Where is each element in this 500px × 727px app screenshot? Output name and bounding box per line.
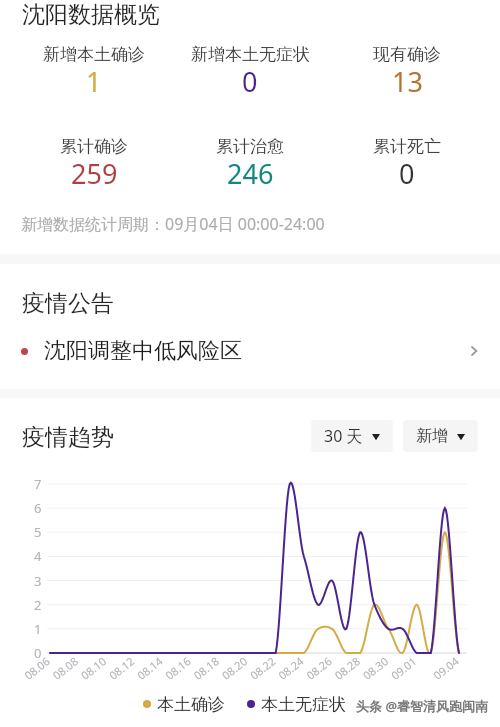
staticText: 新增本土确诊	[43, 44, 145, 65]
other: 查看详情	[464, 341, 484, 361]
staticText: 沈阳数据概览	[22, 0, 160, 29]
staticText: 0	[242, 63, 258, 100]
button[interactable]: 30 天	[311, 420, 393, 452]
button[interactable]: 本土确诊	[143, 694, 225, 714]
staticText: 13	[392, 63, 423, 100]
staticText: 259	[71, 155, 118, 192]
button[interactable]: 沈阳调整中低风险区	[0, 334, 500, 368]
staticText: 246	[227, 155, 274, 192]
staticText: 本土确诊	[157, 694, 225, 714]
staticText: 本土无症状	[261, 694, 346, 714]
button[interactable]: 新增	[403, 420, 478, 452]
staticText: 累计确诊	[60, 136, 128, 157]
staticText: 30 天	[324, 425, 363, 447]
staticText: 0	[399, 155, 415, 192]
staticText: 疫情公告	[22, 289, 114, 318]
staticText: 累计死亡	[373, 136, 441, 157]
staticText: 累计治愈	[216, 136, 284, 157]
staticText: 现有确诊	[373, 44, 441, 65]
staticText: 沈阳调整中低风险区	[44, 337, 242, 365]
button[interactable]: 本土无症状	[247, 694, 346, 714]
staticText: 1	[86, 63, 102, 100]
staticText: 新增	[416, 426, 448, 446]
staticText: 新增数据统计周期：09月04日 00:00-24:00	[21, 213, 325, 235]
staticText: 疫情趋势	[22, 423, 114, 452]
staticText: 新增本土无症状	[191, 44, 310, 65]
staticText: 头条 @睿智清风跑闽南	[356, 697, 489, 715]
